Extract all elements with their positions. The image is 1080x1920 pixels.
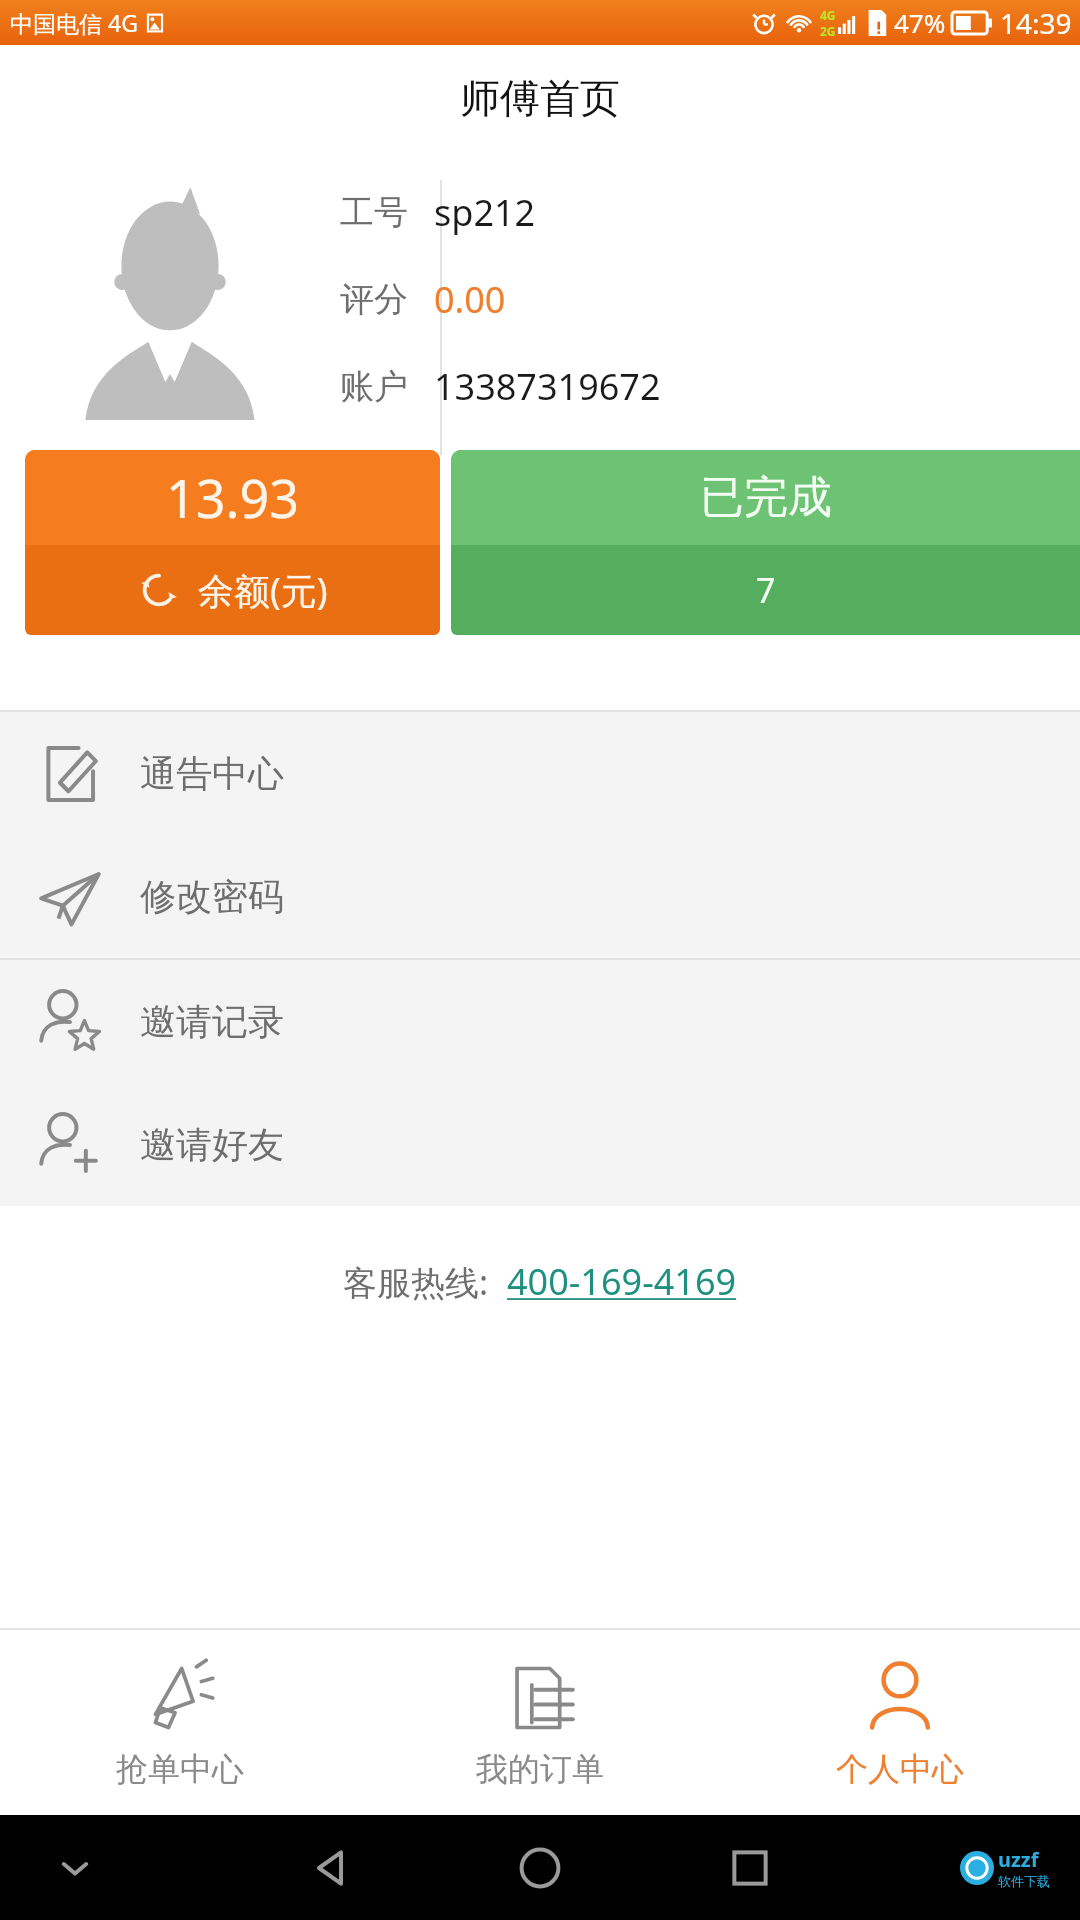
staticText: 2G [820,23,836,39]
button[interactable]: 我的订单 [360,1630,720,1815]
staticText: 13387319672 [434,362,661,411]
button[interactable]: 13.93 [25,450,440,635]
button[interactable]: 修改密码 [0,835,1080,958]
staticText: 中国电信 4G [10,7,138,38]
staticText: 我的订单 [476,1749,604,1789]
staticText: 4G [820,7,836,23]
staticText: 抢单中心 [116,1749,244,1789]
staticText: 400-169-4169 [507,1257,737,1306]
staticText: 工号 [340,191,408,234]
button[interactable]: 抢单中心 [0,1630,360,1815]
staticText: 14:39 [1000,4,1072,42]
staticText: 已完成 [700,470,832,525]
staticText: 7 [756,567,776,613]
button[interactable]: 400-169-4169 [507,1257,737,1306]
button[interactable]: 个人中心 [720,1630,1080,1815]
button[interactable]: 已完成 [451,450,1080,635]
staticText: 评分 [340,278,408,321]
staticText: 个人中心 [836,1749,964,1789]
staticText: 修改密码 [140,874,284,919]
other: Home [510,1838,570,1898]
staticText: 0.00 [434,275,506,324]
button[interactable]: 邀请记录 [0,960,1080,1083]
staticText: 13.93 [166,462,299,533]
button[interactable]: 通告中心 [0,712,1080,835]
staticText: 软件下载 [998,1873,1050,1889]
staticText: uzzf [998,1846,1039,1873]
staticText: sp212 [434,188,536,237]
staticText: 47% [894,5,946,40]
staticText: 客服热线: [343,1259,489,1305]
other: Recents [720,1838,780,1898]
staticText: 邀请记录 [140,999,284,1044]
staticText: 邀请好友 [140,1122,284,1167]
other: Hide keyboard [55,1848,95,1888]
staticText: 师傅首页 [460,73,620,123]
staticText: 通告中心 [140,751,284,796]
staticText: 余额(元) [198,566,328,615]
other: Back [300,1838,360,1898]
staticText: 账户 [340,365,408,408]
button[interactable]: 邀请好友 [0,1083,1080,1206]
